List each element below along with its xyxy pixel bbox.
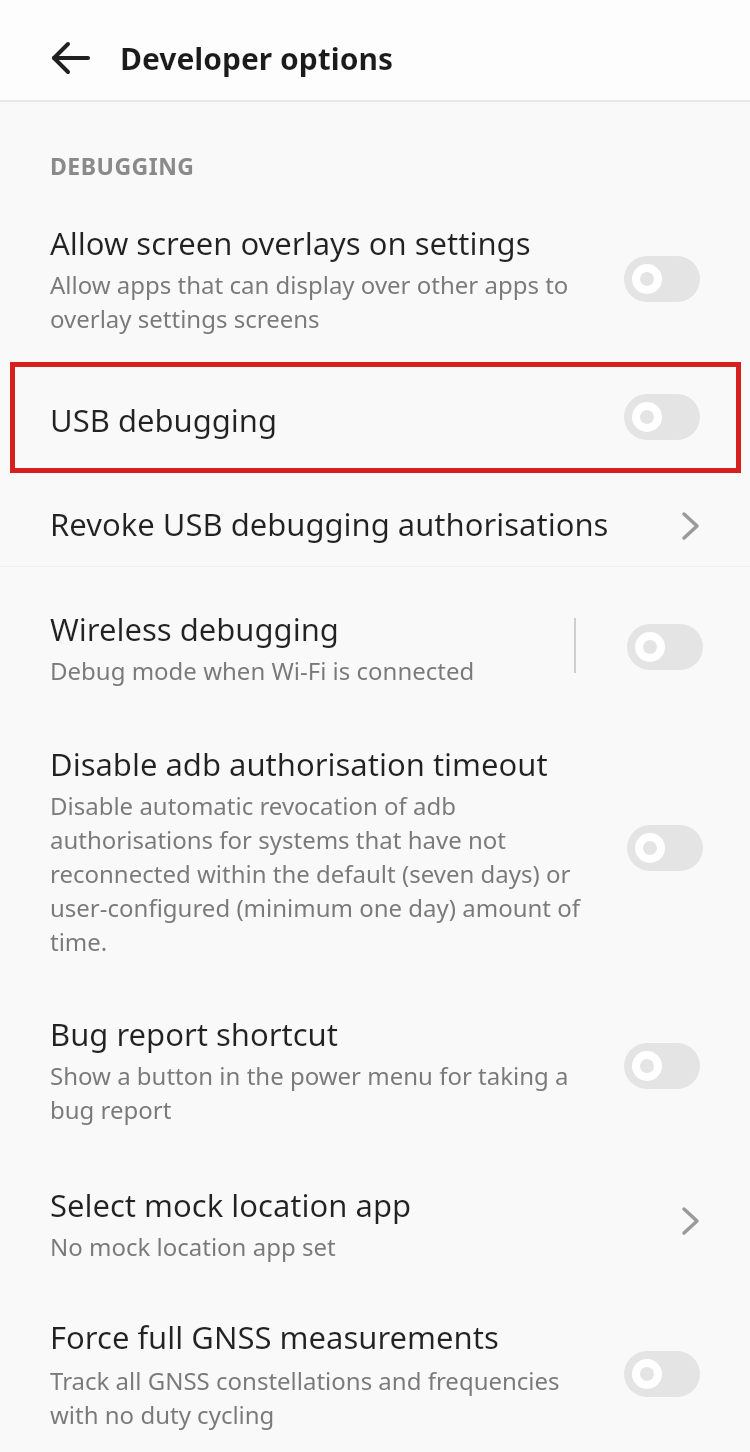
staticText: Debug mode when Wi-Fi is connected <box>50 654 475 687</box>
staticText: No mock location app set <box>50 1230 336 1263</box>
button[interactable]: Revoke USB debugging authorisations <box>0 485 750 565</box>
staticText: Select mock location app <box>50 1184 412 1226</box>
button[interactable]: Bug report shortcut <box>0 997 750 1142</box>
staticText: Allow screen overlays on settings <box>50 222 531 264</box>
staticText: Force full GNSS measurements <box>50 1316 499 1358</box>
staticText: USB debugging <box>50 399 278 441</box>
button[interactable] <box>627 624 703 670</box>
staticText: Bug report shortcut <box>50 1013 338 1055</box>
button[interactable]: Select mock location app <box>0 1168 750 1276</box>
staticText: Developer options <box>120 38 394 79</box>
staticText: Revoke USB debugging authorisations <box>50 503 609 545</box>
button[interactable] <box>40 38 96 78</box>
button[interactable]: Disable adb authorisation timeout <box>0 727 750 975</box>
staticText: DEBUGGING <box>50 150 195 181</box>
staticText: Wireless debugging <box>50 608 339 650</box>
staticText: Allow apps that can display over other a… <box>50 268 569 335</box>
staticText: Disable automatic revocation of adb auth… <box>50 789 580 958</box>
button[interactable] <box>624 394 700 440</box>
button[interactable]: Wireless debugging <box>0 592 750 704</box>
staticText: Track all GNSS constellations and freque… <box>50 1364 560 1431</box>
staticText: Disable adb authorisation timeout <box>50 743 548 785</box>
button[interactable] <box>624 256 700 302</box>
button[interactable] <box>624 1043 700 1089</box>
button[interactable]: USB debugging <box>14 366 737 470</box>
staticText: Show a button in the power menu for taki… <box>50 1059 569 1126</box>
button[interactable]: Allow screen overlays on settings <box>0 205 750 350</box>
button[interactable]: Force full GNSS measurements <box>0 1300 750 1452</box>
button[interactable] <box>627 825 703 871</box>
button[interactable] <box>624 1351 700 1397</box>
